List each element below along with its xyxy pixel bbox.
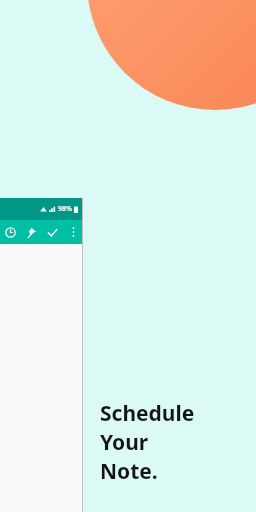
staticText: Schedule	[100, 399, 195, 428]
staticText: 98%	[58, 204, 72, 214]
button[interactable]: Pin note	[21, 220, 42, 244]
button[interactable]: More options	[63, 220, 83, 244]
staticText: Note.	[100, 457, 158, 486]
button[interactable]: Reminder	[0, 220, 21, 244]
staticText: Your	[100, 428, 149, 457]
button[interactable]: Done	[42, 220, 63, 244]
